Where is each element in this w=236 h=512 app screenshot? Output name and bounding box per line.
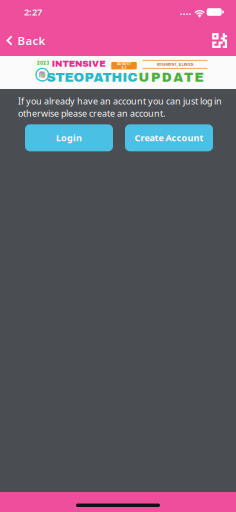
staticText: AUGUST [117,61,131,66]
staticText: If you already have an account you can j… [18,95,222,119]
button[interactable]: Create Account [125,124,213,151]
staticText: Login [56,132,82,144]
button[interactable]: Login [25,124,113,151]
staticText: INTENSIVE [52,59,105,69]
button[interactable]: Scan QR code [203,27,236,54]
button[interactable]: Back [0,28,54,53]
staticText: 5-7 [121,65,126,70]
staticText: UPDATE [138,70,203,84]
staticText: 2:27 [24,6,42,18]
staticText: Create Account [134,132,203,144]
staticText: 2023 [37,61,49,66]
staticText: Back [17,33,45,48]
staticText: STEOPATHIC [46,70,137,84]
staticText: ROSEMONT, ILLINOIS [156,62,193,67]
